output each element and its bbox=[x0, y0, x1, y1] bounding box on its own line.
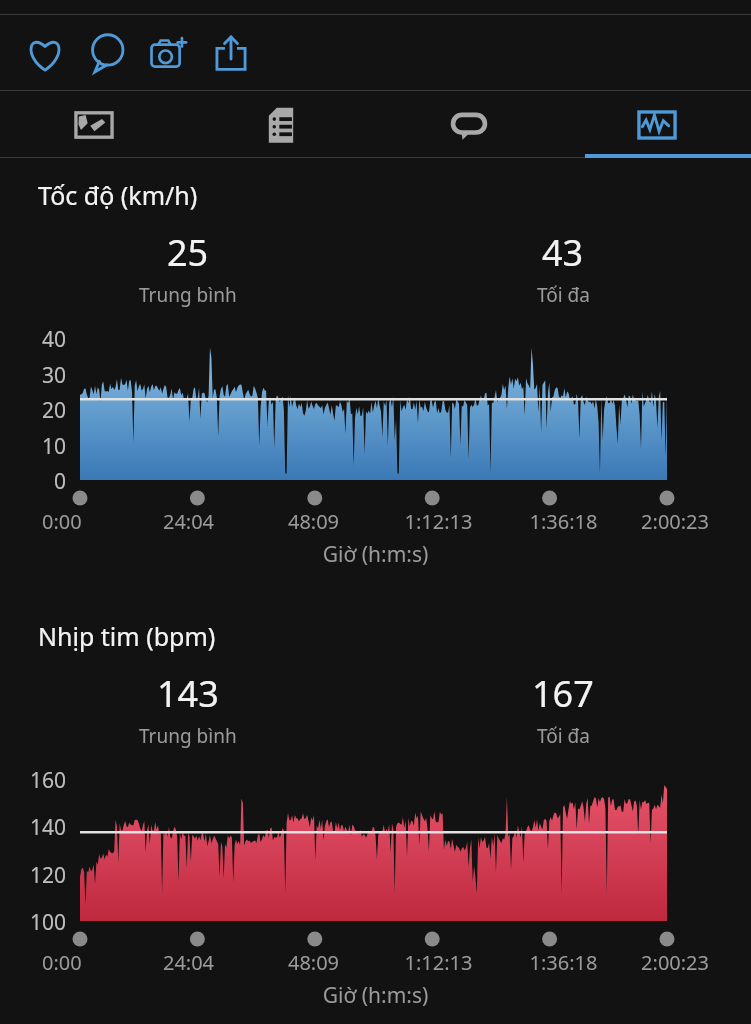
staticText: 1:36:18 bbox=[501, 508, 626, 535]
staticText: Giờ (h:m:s) bbox=[0, 540, 751, 569]
staticText: 167 bbox=[532, 669, 594, 718]
button[interactable]: 167 bbox=[375, 669, 751, 749]
staticText: Tối đa bbox=[537, 282, 590, 308]
staticText: 43 bbox=[542, 228, 584, 277]
staticText: 140 bbox=[0, 813, 66, 842]
staticText: 1:12:13 bbox=[376, 508, 501, 535]
staticText: 100 bbox=[0, 908, 66, 937]
button[interactable]: Comment bbox=[76, 22, 138, 84]
staticText: 20 bbox=[0, 396, 66, 425]
staticText: 40 bbox=[0, 325, 66, 354]
staticText: 160 bbox=[0, 766, 66, 795]
staticText: 0:00 bbox=[42, 508, 126, 535]
button[interactable]: Laps bbox=[375, 91, 563, 158]
staticText: Giờ (h:m:s) bbox=[0, 981, 751, 1010]
button[interactable]: Share bbox=[200, 22, 262, 84]
staticText: 1:12:13 bbox=[376, 949, 501, 976]
staticText: 10 bbox=[0, 432, 66, 461]
staticText: 25 bbox=[167, 228, 209, 277]
staticText: 0 bbox=[0, 467, 66, 496]
button[interactable]: Map bbox=[0, 91, 187, 158]
button[interactable]: 143 bbox=[0, 669, 375, 749]
staticText: 48:09 bbox=[251, 508, 376, 535]
staticText: 2:00:23 bbox=[626, 508, 709, 535]
button[interactable]: 25 bbox=[0, 228, 375, 308]
staticText: 24:04 bbox=[126, 949, 251, 976]
staticText: 24:04 bbox=[126, 508, 251, 535]
staticText: Tối đa bbox=[537, 723, 590, 749]
staticText: 48:09 bbox=[251, 949, 376, 976]
staticText: 30 bbox=[0, 361, 66, 390]
button[interactable]: Add photo bbox=[138, 22, 200, 84]
staticText: Tốc độ (km/h) bbox=[38, 178, 198, 212]
staticText: Nhịp tim (bpm) bbox=[38, 619, 216, 653]
button[interactable]: Details bbox=[187, 91, 375, 158]
staticText: 143 bbox=[157, 669, 219, 718]
staticText: 0:00 bbox=[42, 949, 126, 976]
staticText: 120 bbox=[0, 861, 66, 890]
staticText: 2:00:23 bbox=[626, 949, 709, 976]
button[interactable]: Like bbox=[14, 22, 76, 84]
staticText: Trung bình bbox=[139, 723, 237, 749]
button[interactable]: Charts bbox=[563, 91, 751, 158]
staticText: Trung bình bbox=[139, 282, 237, 308]
staticText: 1:36:18 bbox=[501, 949, 626, 976]
button[interactable]: 43 bbox=[375, 228, 751, 308]
